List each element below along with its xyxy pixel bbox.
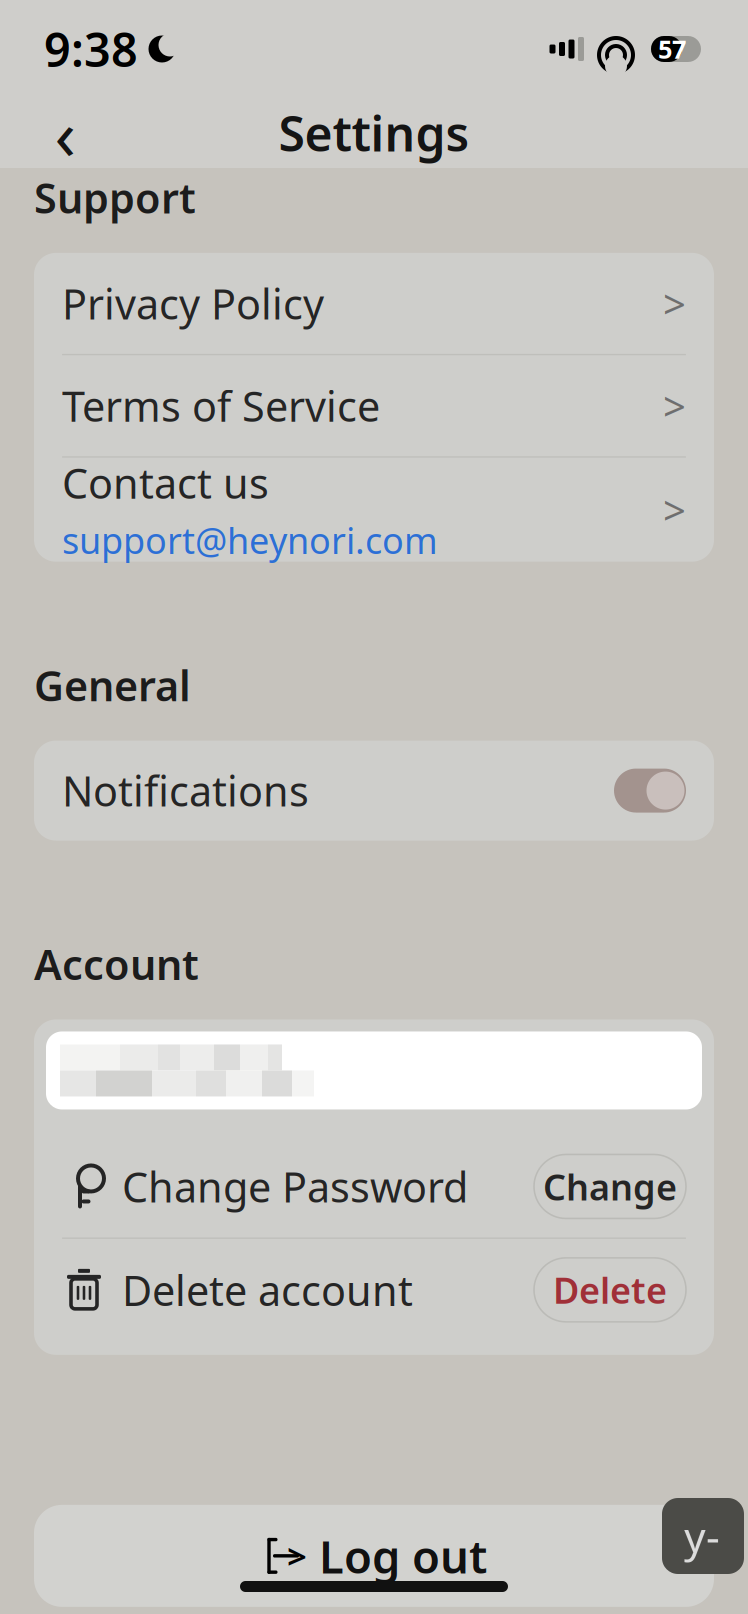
staticText: support@heynori.com [62, 516, 438, 564]
staticText: > [663, 483, 686, 536]
staticText: Notifications [62, 763, 309, 818]
staticText: ‹ [54, 87, 75, 179]
button[interactable]: Contact us [34, 458, 714, 562]
staticText: Support [34, 170, 196, 225]
staticText: Account [34, 937, 199, 991]
button[interactable]: Delete [534, 1258, 686, 1322]
staticText: Change Password [122, 1159, 468, 1214]
staticText: Delete [553, 1266, 667, 1314]
button[interactable]: Delete account [34, 1239, 714, 1341]
staticText: Privacy Policy [62, 276, 324, 331]
staticText: General [34, 658, 191, 713]
staticText: Terms of Service [62, 378, 380, 433]
button[interactable]: Notifications [34, 741, 714, 841]
button[interactable]: Terms of Service [34, 355, 714, 456]
staticText: Settings [278, 101, 469, 165]
staticText: > [663, 277, 686, 330]
button[interactable]: Change [534, 1154, 686, 1218]
staticText: Type [684, 1451, 734, 1614]
button[interactable]: Privacy Policy [34, 253, 714, 354]
button[interactable]: Back [30, 98, 100, 168]
staticText: Change [543, 1163, 677, 1210]
button[interactable]: > [34, 1505, 714, 1607]
staticText: 57 [658, 32, 686, 66]
staticText: > [663, 379, 686, 432]
staticText: Delete account [122, 1262, 413, 1317]
staticText: > [287, 1533, 307, 1579]
staticText: Log out [319, 1526, 487, 1586]
staticText: Contact us [62, 455, 269, 510]
staticText: 9:38 [44, 18, 138, 80]
button[interactable]: Change Password [34, 1135, 714, 1237]
